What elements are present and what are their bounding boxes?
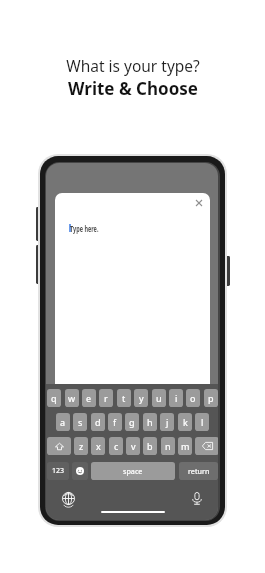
staticText: m bbox=[181, 440, 190, 452]
staticText: i bbox=[175, 392, 178, 404]
staticText: l bbox=[201, 416, 204, 428]
staticText: Write & Choose bbox=[68, 77, 198, 100]
staticText: w bbox=[68, 392, 76, 404]
staticText: g bbox=[129, 416, 135, 428]
staticText: k bbox=[183, 416, 188, 428]
staticText: What is your type? bbox=[66, 55, 200, 76]
button[interactable]: k bbox=[178, 413, 192, 431]
button[interactable]: i bbox=[169, 389, 183, 407]
button[interactable]: n bbox=[161, 437, 175, 455]
staticText: c bbox=[114, 440, 119, 452]
staticText: n bbox=[165, 440, 171, 452]
staticText: space bbox=[123, 466, 143, 476]
button[interactable]: m bbox=[178, 437, 192, 455]
button[interactable]: Shift bbox=[47, 437, 71, 455]
button[interactable]: s bbox=[73, 413, 87, 431]
button[interactable]: x bbox=[91, 437, 105, 455]
button[interactable]: Change keyboard bbox=[60, 490, 76, 506]
button[interactable]: o bbox=[186, 389, 200, 407]
staticText: p bbox=[208, 392, 214, 404]
button[interactable]: l bbox=[195, 413, 209, 431]
button[interactable]: z bbox=[74, 437, 88, 455]
button[interactable]: Backspace bbox=[195, 437, 218, 455]
staticText: f bbox=[113, 416, 117, 428]
staticText: z bbox=[79, 440, 84, 452]
staticText: b bbox=[147, 440, 153, 452]
button[interactable]: a bbox=[56, 413, 70, 431]
button[interactable]: e bbox=[82, 389, 96, 407]
staticText: Type here. bbox=[70, 223, 99, 235]
staticText: e bbox=[86, 392, 92, 404]
button[interactable]: y bbox=[134, 389, 148, 407]
staticText: t bbox=[122, 392, 126, 404]
staticText: a bbox=[60, 416, 66, 428]
button[interactable]: u bbox=[152, 389, 166, 407]
button[interactable]: space bbox=[91, 462, 175, 480]
button[interactable]: c bbox=[109, 437, 123, 455]
button[interactable]: Emoji bbox=[72, 462, 88, 480]
button[interactable]: j bbox=[160, 413, 174, 431]
button[interactable]: f bbox=[108, 413, 122, 431]
button[interactable]: b bbox=[143, 437, 157, 455]
staticText: d bbox=[95, 416, 101, 428]
button[interactable]: 123 bbox=[47, 462, 69, 480]
staticText: r bbox=[104, 392, 108, 404]
staticText: j bbox=[166, 416, 169, 428]
button[interactable]: v bbox=[126, 437, 140, 455]
staticText: u bbox=[156, 392, 162, 404]
staticText: x bbox=[96, 440, 101, 452]
button[interactable]: Dictate bbox=[189, 490, 205, 506]
button[interactable]: return bbox=[179, 462, 218, 480]
button[interactable]: g bbox=[125, 413, 139, 431]
button[interactable]: q bbox=[47, 389, 61, 407]
staticText: return bbox=[188, 466, 210, 476]
button[interactable]: h bbox=[143, 413, 157, 431]
staticText: h bbox=[147, 416, 153, 428]
staticText: s bbox=[78, 416, 83, 428]
button[interactable]: p bbox=[204, 389, 218, 407]
button[interactable]: w bbox=[65, 389, 79, 407]
staticText: q bbox=[51, 392, 57, 404]
staticText: o bbox=[190, 392, 196, 404]
button[interactable]: d bbox=[91, 413, 105, 431]
button[interactable]: r bbox=[99, 389, 113, 407]
staticText: v bbox=[131, 440, 136, 452]
staticText: y bbox=[139, 392, 144, 404]
button[interactable]: Close bbox=[190, 194, 208, 212]
staticText: 123 bbox=[52, 466, 65, 476]
button[interactable]: t bbox=[117, 389, 131, 407]
